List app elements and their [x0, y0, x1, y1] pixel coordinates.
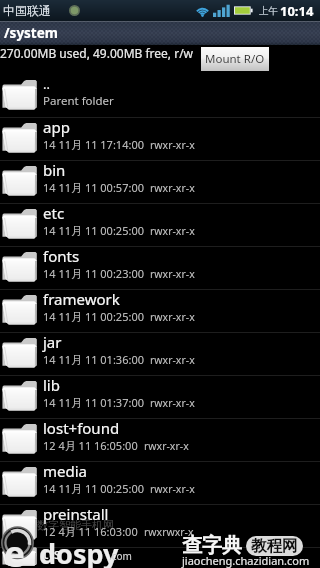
staticText: 14 11月 11 01:37:00 [43, 395, 144, 410]
button[interactable]: /system [0, 21, 320, 45]
button[interactable]: bin [0, 161, 320, 204]
staticText: 14 11月 11 00:25:00 [43, 481, 144, 496]
staticText: rwxr-xr-x [150, 310, 195, 324]
button[interactable]: jar [0, 333, 320, 376]
staticText: tts [43, 543, 62, 563]
staticText: rwxr-xr-x [150, 267, 195, 281]
staticText: e [4, 530, 25, 568]
staticText: 14 11月 11 00:25:00 [43, 309, 144, 324]
staticText: 12 4月 11 16:05:00 [43, 438, 138, 453]
staticText: 14 11月 11 01:36:00 [43, 352, 144, 367]
staticText: 14 11月 11 00:23:00 [43, 266, 144, 281]
staticText: /system [4, 24, 58, 42]
staticText: rwxr-xr-x [150, 224, 195, 238]
staticText: 14 11月 11 17:14:00 [43, 137, 144, 152]
staticText: 12 4月 11 16:03:00 [43, 524, 138, 539]
button[interactable]: lib [0, 376, 320, 419]
button[interactable]: preinstall [0, 505, 320, 548]
staticText: rwxr-xr-x [144, 439, 189, 453]
staticText: app [43, 117, 70, 137]
staticText: Mount R/O [205, 51, 265, 67]
button[interactable]: app [0, 118, 320, 161]
button[interactable]: media [0, 462, 320, 505]
staticText: 查字典 [182, 533, 242, 558]
staticText: jar [43, 332, 62, 352]
staticText: fonts [43, 246, 80, 266]
staticText: 上午 [259, 5, 278, 17]
staticText: rwxr-xr-x [150, 181, 195, 195]
staticText: etc [43, 203, 65, 223]
button[interactable]: .. [0, 75, 320, 118]
button[interactable]: tts [0, 548, 320, 568]
button[interactable]: lost+found [0, 419, 320, 462]
staticText: framework [43, 289, 120, 309]
staticText: rwxr-xr-x [150, 396, 195, 410]
staticText: jiaocheng.chazidian.com [182, 553, 310, 568]
staticText: lib [43, 375, 60, 395]
staticText: 14 11月 11 00:57:00 [43, 180, 144, 195]
staticText: 14 11月 11 00:25:00 [43, 223, 144, 238]
staticText: 270.00MB used, 49.00MB free, r/w [0, 45, 194, 61]
staticText: rwxr-xr-x [150, 138, 195, 152]
button[interactable]: fonts [0, 247, 320, 290]
staticText: Parent folder [43, 93, 114, 109]
staticText: preinstall [43, 504, 109, 524]
staticText: bin [43, 160, 66, 180]
staticText: 10:14 [280, 2, 314, 20]
staticText: .com [109, 549, 132, 563]
staticText: dospy [39, 535, 119, 568]
staticText: media [43, 461, 87, 481]
staticText: rwxr-xr-x [150, 482, 195, 496]
staticText: 数字智能手机网 [37, 518, 114, 532]
staticText: rwxrwxr-x [144, 525, 194, 539]
staticText: rwxr-xr-x [150, 353, 195, 367]
button[interactable]: etc [0, 204, 320, 247]
staticText: lost+found [43, 418, 120, 438]
staticText: .. [43, 75, 50, 93]
button[interactable]: Mount R/O [201, 47, 269, 71]
staticText: 中国联通 [3, 3, 51, 18]
button[interactable]: framework [0, 290, 320, 333]
staticText: 教程网 [251, 536, 298, 556]
